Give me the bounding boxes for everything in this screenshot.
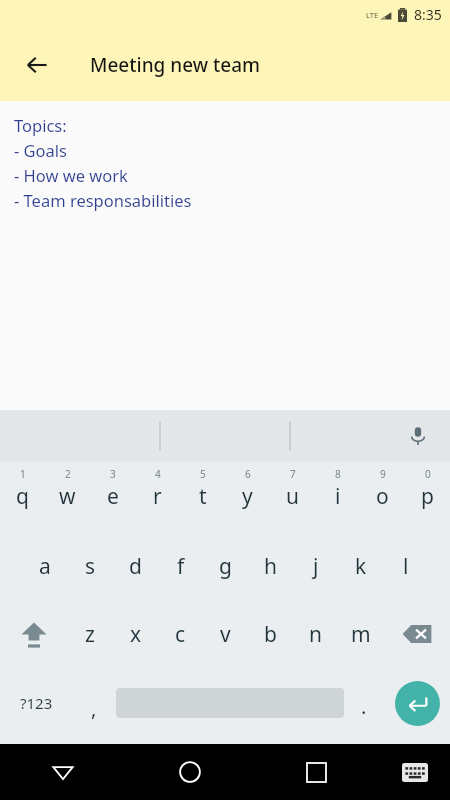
button[interactable]: 9 — [360, 462, 405, 532]
staticText: 0 — [425, 467, 431, 481]
button[interactable]: 0 — [405, 462, 450, 532]
staticText: n — [309, 620, 322, 649]
staticText: p — [421, 482, 434, 511]
button[interactable]: g — [203, 532, 248, 600]
staticText: r — [153, 482, 162, 511]
button[interactable]: s — [68, 532, 113, 600]
staticText: c — [175, 620, 186, 649]
button[interactable]: n — [293, 600, 338, 668]
button[interactable] — [116, 668, 344, 738]
staticText: f — [177, 552, 185, 581]
button[interactable]: 6 — [225, 462, 270, 532]
staticText: m — [351, 620, 371, 649]
staticText: , — [91, 695, 97, 722]
button[interactable]: x — [113, 600, 158, 668]
staticText: b — [264, 620, 277, 649]
staticText: - How we work — [14, 164, 128, 186]
button[interactable]: a — [22, 532, 68, 600]
button[interactable]: 4 — [135, 462, 180, 532]
staticText: e — [107, 482, 119, 511]
staticText: LTE — [366, 10, 379, 20]
staticText: - Team responsabilities — [14, 189, 192, 211]
staticText: 8:35 — [414, 5, 442, 24]
staticText: 7 — [290, 467, 296, 481]
staticText: g — [219, 552, 232, 581]
staticText: v — [220, 620, 231, 649]
button[interactable]: Shift — [0, 600, 67, 668]
button[interactable]: d — [113, 532, 158, 600]
staticText: d — [129, 552, 142, 581]
button[interactable]: 7 — [270, 462, 315, 532]
staticText: k — [355, 552, 367, 581]
button[interactable]: Switch keyboard — [380, 744, 450, 800]
staticText: Topics: — [14, 114, 67, 136]
staticText: 3 — [110, 467, 116, 481]
button[interactable]: . — [344, 668, 384, 738]
button[interactable]: j — [293, 532, 338, 600]
staticText: Meeting new team — [90, 52, 261, 78]
staticText: j — [313, 552, 319, 581]
staticText: l — [403, 552, 409, 581]
staticText: 5 — [200, 467, 206, 481]
staticText: ?123 — [20, 693, 53, 713]
button[interactable]: b — [248, 600, 293, 668]
button[interactable]: Back — [14, 42, 60, 88]
staticText: 9 — [380, 467, 386, 481]
staticText: a — [39, 552, 51, 581]
staticText: z — [85, 620, 95, 649]
staticText: u — [286, 482, 299, 511]
staticText: 6 — [245, 467, 251, 481]
button[interactable]: Backspace — [383, 600, 450, 668]
button[interactable]: ?123 — [0, 668, 72, 738]
staticText: w — [59, 482, 76, 511]
button[interactable]: z — [67, 600, 113, 668]
button[interactable]: 5 — [180, 462, 225, 532]
button[interactable]: h — [248, 532, 293, 600]
staticText: y — [242, 482, 253, 511]
staticText: q — [16, 482, 29, 511]
staticText: 2 — [65, 467, 71, 481]
button[interactable]: , — [72, 668, 116, 738]
button[interactable]: 8 — [315, 462, 360, 532]
staticText: 1 — [20, 467, 26, 481]
staticText: 8 — [335, 467, 341, 481]
button[interactable]: k — [338, 532, 383, 600]
button[interactable]: Enter — [384, 668, 450, 738]
button[interactable]: 1 — [0, 462, 45, 532]
button[interactable]: Voice input — [398, 416, 438, 456]
staticText: 4 — [155, 467, 161, 481]
button[interactable]: l — [383, 532, 428, 600]
button[interactable]: Back — [0, 744, 126, 800]
staticText: . — [361, 693, 367, 720]
button[interactable]: Home — [126, 744, 253, 800]
button[interactable]: 2 — [45, 462, 90, 532]
button[interactable]: c — [158, 600, 203, 668]
button[interactable]: v — [203, 600, 248, 668]
staticText: - Goals — [14, 139, 68, 161]
staticText: x — [130, 620, 142, 649]
button[interactable]: Recents — [253, 744, 380, 800]
button[interactable]: f — [158, 532, 203, 600]
staticText: h — [264, 552, 277, 581]
staticText: s — [85, 552, 96, 581]
staticText: i — [335, 482, 341, 511]
button[interactable]: 3 — [90, 462, 135, 532]
staticText: t — [199, 482, 207, 511]
button[interactable]: m — [338, 600, 383, 668]
staticText: o — [376, 482, 389, 511]
